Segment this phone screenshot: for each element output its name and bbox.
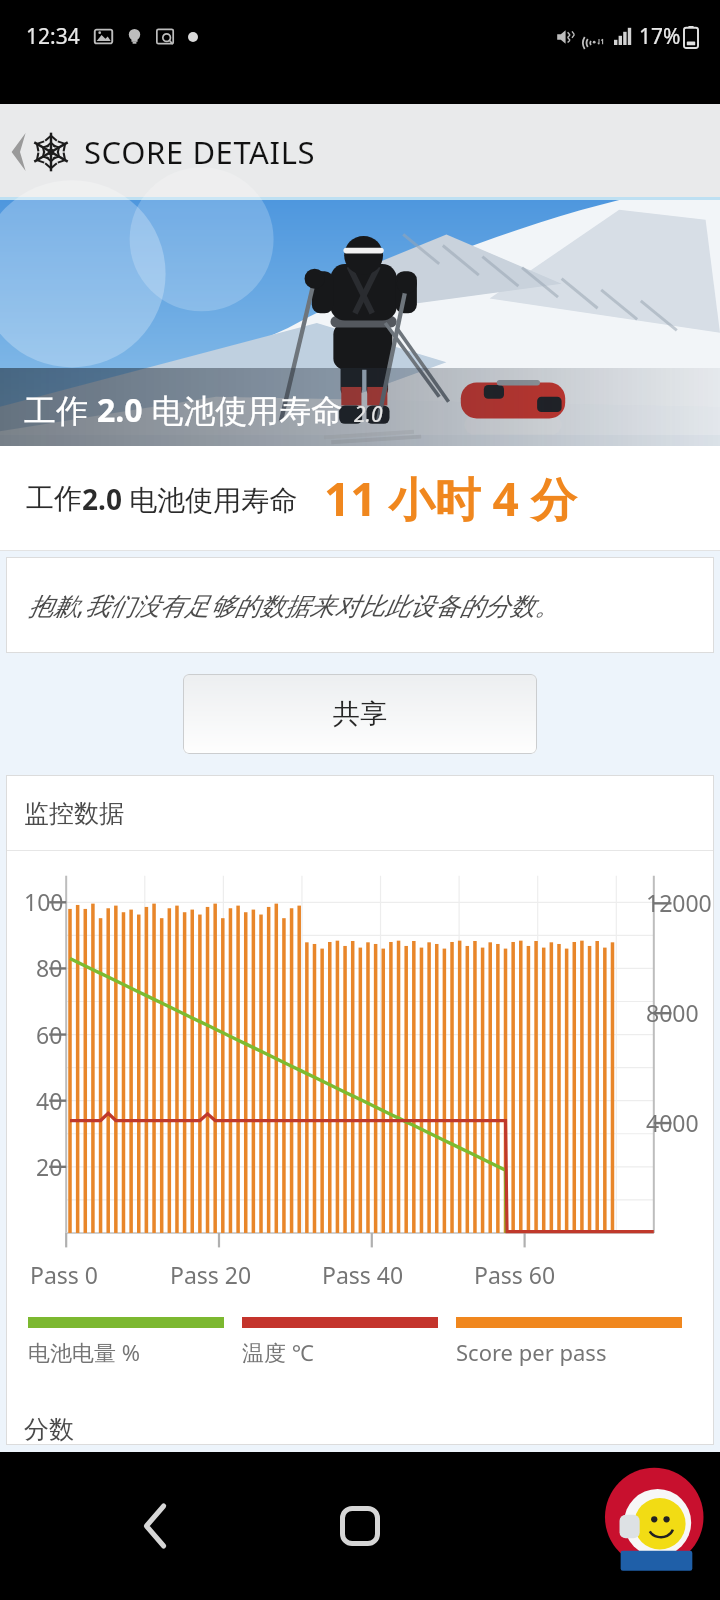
staticText: 4000 [646, 1107, 699, 1138]
button[interactable]: Back [118, 1488, 194, 1564]
staticText: Pass 40 [322, 1259, 404, 1290]
staticText: 共享 [333, 697, 387, 731]
staticText: 温度 ℃ [242, 1337, 314, 1367]
staticText: 60 [36, 1019, 63, 1050]
button[interactable]: Back [8, 104, 316, 200]
staticText: 12:34 [26, 22, 80, 51]
staticText: 20 [36, 1151, 63, 1182]
staticText: 工作 [26, 481, 82, 516]
staticText: Score per pass [456, 1337, 607, 1367]
button[interactable]: 共享 [183, 674, 537, 754]
staticText: 分数 [24, 1414, 74, 1445]
staticText: 17% [639, 22, 681, 51]
staticText: 100 [24, 886, 64, 917]
staticText: 2.0 [82, 480, 122, 518]
staticText: 电池使用寿命 [143, 388, 344, 432]
staticText: 80 [36, 952, 63, 983]
staticText: 抱歉,我们没有足够的数据来对比此设备的分数。 [28, 588, 560, 622]
button[interactable]: Home [322, 1488, 398, 1564]
staticText: 40 [36, 1085, 63, 1116]
staticText: 工作 [24, 388, 97, 432]
staticText: 2.0 [97, 388, 143, 432]
staticText: 12000 [646, 887, 712, 918]
staticText: Pass 0 [30, 1259, 98, 1290]
staticText: 2.0 [354, 400, 383, 429]
staticText: 电池使用寿命 [122, 480, 298, 518]
staticText: Pass 60 [474, 1259, 556, 1290]
staticText: 11 小时 4 分 [324, 467, 577, 530]
staticText: 监控数据 [24, 798, 124, 829]
staticText: 8000 [646, 997, 699, 1028]
staticText: SCORE DETAILS [84, 131, 316, 173]
staticText: 电池电量 % [28, 1337, 141, 1367]
staticText: Pass 20 [170, 1259, 252, 1290]
